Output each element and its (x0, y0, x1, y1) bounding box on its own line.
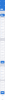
button[interactable] (0, 35, 5, 38)
button[interactable] (0, 18, 5, 21)
button[interactable] (0, 14, 5, 16)
button[interactable] (0, 25, 5, 28)
button[interactable] (0, 88, 5, 91)
button[interactable] (0, 31, 5, 35)
button[interactable] (0, 28, 5, 31)
button[interactable] (0, 81, 5, 84)
button[interactable] (0, 54, 5, 57)
button[interactable] (0, 70, 5, 73)
button[interactable] (0, 91, 5, 95)
button[interactable] (0, 61, 5, 64)
button[interactable] (0, 51, 5, 54)
button[interactable] (0, 44, 5, 47)
button[interactable] (0, 76, 5, 80)
button[interactable] (0, 84, 5, 88)
button[interactable] (0, 21, 5, 25)
button[interactable] (0, 41, 5, 44)
button[interactable] (0, 73, 5, 76)
button[interactable] (0, 58, 5, 61)
